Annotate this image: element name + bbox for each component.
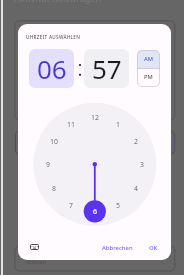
button[interactable]: 11 [63, 118, 79, 130]
staticText: 3 [140, 160, 144, 169]
staticText: 6 [93, 207, 97, 216]
button[interactable]: 4 [128, 182, 144, 194]
button[interactable]: PM [137, 68, 160, 86]
button[interactable]: 57 [84, 49, 129, 88]
staticText: 9 [46, 160, 50, 169]
button[interactable]: 6 [87, 205, 103, 217]
button[interactable]: 06 [29, 49, 74, 88]
staticText: AM [144, 55, 153, 63]
button[interactable]: 10 [46, 135, 62, 147]
staticText: 4 [134, 184, 138, 193]
staticText: 5 [116, 201, 120, 210]
button[interactable]: 5 [110, 199, 126, 211]
button[interactable]: 12 [87, 111, 103, 123]
button[interactable]: Abbrechen [99, 241, 130, 255]
button[interactable]: Tastatureingabe [26, 239, 43, 254]
button[interactable]: 1 [110, 118, 126, 130]
button[interactable]: OK [146, 241, 155, 255]
staticText: Notizen [25, 258, 47, 266]
staticText: 1 [116, 120, 120, 129]
staticText: 11 [67, 120, 75, 129]
button[interactable]: AM [137, 50, 160, 67]
staticText: Abbrechen [102, 244, 133, 252]
staticText: 06 [37, 51, 67, 86]
staticText: 7 [69, 201, 73, 210]
staticText: 12 [91, 113, 99, 122]
staticText: Aktivität hinzufügen [14, 0, 102, 4]
button[interactable]: 7 [63, 199, 79, 211]
staticText: 8 [52, 184, 56, 193]
staticText: PM [144, 73, 153, 81]
button[interactable]: 2 [128, 135, 144, 147]
staticText: 2 [134, 137, 138, 146]
button[interactable]: 8 [46, 182, 62, 194]
staticText: 10 [50, 137, 58, 146]
staticText: OK [149, 244, 158, 252]
staticText: 57 [92, 51, 122, 86]
button[interactable]: 3 [134, 158, 150, 170]
button[interactable]: 9 [40, 158, 56, 170]
staticText: UHRZEIT AUSWÄHLEN [26, 34, 81, 40]
